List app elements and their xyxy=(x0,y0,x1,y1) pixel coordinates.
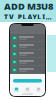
staticText: ADD M3U8 xyxy=(4,0,53,12)
button[interactable]: Add playlist xyxy=(10,79,45,83)
button[interactable]: Playlist xyxy=(10,66,45,74)
button[interactable]: Settings xyxy=(33,87,44,92)
button[interactable]: Playlist xyxy=(10,42,45,50)
staticText: TV PLAYLISTS xyxy=(4,12,54,21)
button[interactable]: Playlist xyxy=(10,50,45,58)
button[interactable]: Playlist xyxy=(10,34,45,42)
button[interactable]: Playlists xyxy=(11,87,22,92)
button[interactable]: Channels xyxy=(22,87,33,92)
button[interactable]: Playlist xyxy=(10,58,45,66)
